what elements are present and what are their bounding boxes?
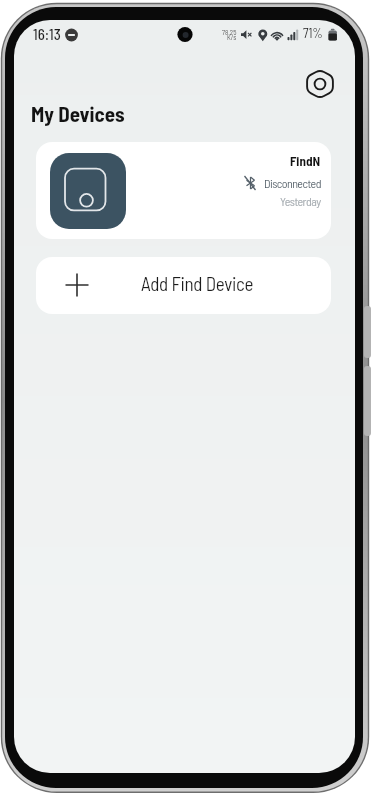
staticText: 71% <box>303 25 323 41</box>
staticText: My Devices <box>31 101 125 126</box>
staticText: Add Find Device <box>141 272 254 295</box>
staticText: Yesterday <box>280 194 321 208</box>
staticText: FindN <box>290 153 321 169</box>
button[interactable]: Add Find Device <box>36 257 331 314</box>
staticText: 78.25 <box>222 28 237 36</box>
button[interactable]: FindN <box>36 142 331 239</box>
staticText: 16:13 <box>33 25 61 43</box>
staticText: K/s <box>227 33 237 41</box>
button[interactable] <box>305 70 335 100</box>
staticText: Disconnected <box>264 176 321 190</box>
